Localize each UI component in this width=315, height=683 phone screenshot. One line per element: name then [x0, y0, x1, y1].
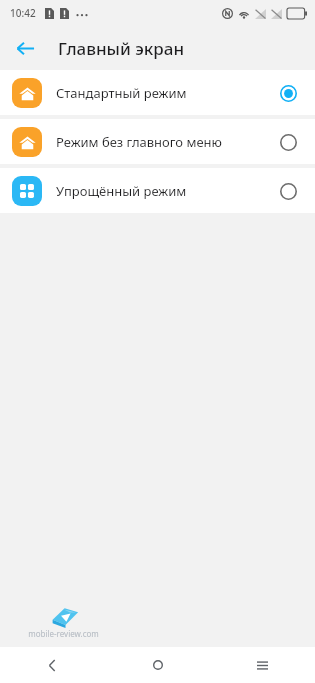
button[interactable]: Back — [0, 647, 105, 683]
button[interactable]: Selected — [273, 78, 303, 108]
button[interactable]: Recent apps — [210, 647, 315, 683]
staticText: 10:42 — [10, 6, 36, 20]
button[interactable]: Стандартный режим — [0, 70, 315, 115]
button[interactable]: Back — [8, 31, 42, 65]
staticText: Главный экран — [58, 37, 185, 60]
staticText: Режим без главного меню — [56, 133, 273, 151]
button[interactable]: Упрощённый режим — [0, 168, 315, 213]
staticText: mobile-review.com — [28, 628, 99, 639]
button[interactable]: Not selected — [273, 176, 303, 206]
button[interactable]: Режим без главного меню — [0, 119, 315, 164]
staticText: Стандартный режим — [56, 84, 273, 102]
button[interactable]: Home — [105, 647, 210, 683]
staticText: Упрощённый режим — [56, 182, 273, 200]
button[interactable]: Not selected — [273, 127, 303, 157]
